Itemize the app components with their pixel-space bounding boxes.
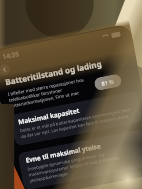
staticText: 81 %: [101, 78, 115, 87]
button[interactable]: Back: [0, 63, 11, 76]
staticText: Batteritilstand og lading: [4, 58, 103, 87]
staticText: Maksimal kapasitet: [17, 106, 80, 126]
staticText: Innebygde dynamiske programvare- og mask…: [27, 145, 142, 184]
staticText: Evne til maksimal ytelse: [25, 141, 102, 165]
staticText: Dette er et mål på batterikapasiteten sa…: [19, 106, 135, 140]
staticText: I tilfeller med større reparasjoner hos …: [7, 74, 100, 109]
button[interactable]: Maksimal kapasitet: [10, 90, 142, 146]
staticText: 14:35: [2, 49, 20, 61]
button[interactable]: Evne til maksimal ytelse: [17, 129, 142, 189]
button[interactable]: 81 %: [93, 73, 122, 91]
